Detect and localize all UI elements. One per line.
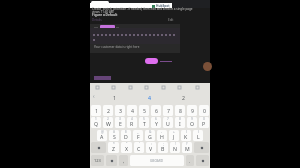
button[interactable]: 3	[115, 105, 125, 116]
staticText: 6	[155, 117, 157, 121]
button[interactable]: Emoji	[106, 155, 117, 166]
button[interactable]	[91, 1, 109, 8]
button[interactable]: .	[186, 155, 194, 166]
staticText: L	[197, 133, 200, 140]
staticText: 1	[95, 107, 98, 114]
button[interactable]: '	[134, 142, 144, 153]
button[interactable]: ;	[158, 142, 168, 153]
staticText: N	[173, 145, 177, 152]
staticText: 9	[191, 107, 194, 114]
staticText: X	[125, 145, 129, 152]
button[interactable]: Keyboard tool	[129, 86, 132, 89]
staticText: A	[100, 133, 104, 140]
staticText: T	[143, 120, 146, 127]
staticText: 1	[113, 94, 116, 101]
button[interactable]: Keyboard tool	[196, 86, 199, 89]
button[interactable]: _	[133, 130, 143, 141]
button[interactable]: 8	[175, 105, 185, 116]
button[interactable]: -	[157, 130, 167, 141]
staticText: Edit	[168, 18, 174, 22]
staticText: O	[190, 120, 195, 127]
button[interactable]: #	[109, 130, 119, 141]
button[interactable]: 4	[127, 105, 137, 116]
staticText: Q	[94, 120, 99, 127]
staticText: HubSpot	[156, 4, 170, 8]
button[interactable]: (	[181, 130, 191, 141]
button[interactable]: Keyboard tool	[162, 86, 165, 89]
button[interactable]: ,	[119, 155, 128, 166]
button[interactable]: GBOARD	[130, 155, 184, 166]
button[interactable]: +	[169, 130, 179, 141]
staticText: C	[137, 145, 141, 152]
button[interactable]: 9	[187, 105, 197, 116]
button[interactable]: 8	[175, 117, 185, 128]
button[interactable]: 6	[151, 117, 161, 128]
button[interactable]: 4	[127, 117, 137, 128]
button[interactable]	[145, 58, 158, 64]
button[interactable]: Keyboard tool	[145, 86, 148, 89]
button[interactable]: 0	[199, 117, 209, 128]
staticText: )	[198, 130, 199, 134]
staticText: GBOARD	[150, 159, 164, 163]
button[interactable]: 7	[163, 105, 173, 116]
staticText: D	[124, 133, 128, 140]
button[interactable]: )	[193, 130, 203, 141]
staticText: B	[161, 145, 165, 152]
staticText: I	[179, 120, 181, 127]
staticText: '	[139, 142, 140, 146]
button[interactable]: 2	[103, 117, 113, 128]
staticText: Your customer data is right here	[94, 45, 140, 49]
button[interactable]: Enter	[196, 155, 209, 166]
staticText: (	[186, 130, 187, 134]
button[interactable]: &	[145, 130, 155, 141]
staticText: 4	[131, 107, 134, 114]
staticText: 123	[94, 158, 101, 163]
staticText: W	[106, 120, 111, 127]
staticText: 6	[155, 107, 158, 114]
button[interactable]: *	[108, 142, 119, 153]
staticText: Y	[155, 120, 158, 127]
button[interactable]: Keyboard tool	[178, 86, 181, 89]
button[interactable]: 1	[91, 105, 101, 116]
staticText: P	[202, 120, 206, 127]
staticText: ‹	[93, 93, 95, 100]
button[interactable]: @	[97, 130, 107, 141]
button[interactable]: 123	[91, 155, 104, 166]
button[interactable]: 5	[139, 105, 149, 116]
staticText: R	[130, 120, 134, 127]
button[interactable]: :	[146, 142, 156, 153]
button[interactable]: Shift	[91, 142, 106, 153]
staticText: views 11:40 AM	[92, 10, 114, 14]
button[interactable]: 2	[103, 105, 113, 116]
button[interactable]: 5	[139, 117, 149, 128]
button[interactable]: 0	[199, 105, 209, 116]
staticText: H	[160, 133, 164, 140]
button[interactable]: Backspace	[194, 142, 209, 153]
button[interactable]: 6	[151, 105, 161, 116]
staticText: @	[101, 130, 104, 134]
staticText: +	[173, 130, 175, 134]
staticText: ;	[163, 142, 164, 146]
staticText: 8	[179, 107, 182, 114]
staticText: .	[189, 158, 191, 164]
button[interactable]: 1	[91, 117, 101, 128]
button[interactable]: !	[170, 142, 180, 153]
button[interactable]: Keyboard tool	[112, 86, 115, 89]
button[interactable]: ?	[182, 142, 192, 153]
staticText: 3	[119, 117, 121, 121]
button[interactable]: "	[121, 142, 132, 153]
staticText: 1	[95, 117, 97, 121]
button[interactable]: 3	[115, 117, 125, 128]
staticText: 5	[143, 117, 145, 121]
button[interactable]: $	[121, 130, 131, 141]
button[interactable]: 7	[163, 117, 173, 128]
staticText: 2	[107, 107, 110, 114]
button[interactable]: Keyboard tool	[96, 86, 99, 89]
button[interactable]: 9	[187, 117, 197, 128]
staticText: 2	[107, 117, 109, 121]
button[interactable]	[100, 25, 115, 29]
staticText: 4	[148, 94, 151, 101]
staticText: ,	[123, 158, 125, 164]
staticText: Figure a Default	[92, 13, 118, 17]
